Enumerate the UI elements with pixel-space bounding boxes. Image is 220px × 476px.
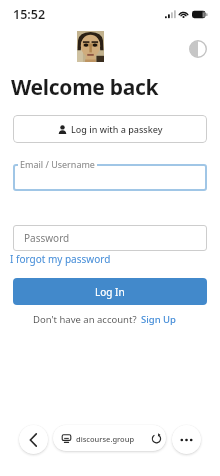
- button[interactable]: [172, 425, 201, 454]
- staticText: Log In: [95, 285, 125, 299]
- staticText: Welcome back: [11, 73, 159, 102]
- staticText: Don't have an account?: [33, 313, 137, 326]
- button[interactable]: Sign Up: [141, 313, 177, 326]
- staticText: Password: [24, 231, 70, 245]
- button[interactable]: discourse.group: [53, 425, 166, 451]
- staticText: Email / Username: [20, 158, 95, 170]
- staticText: I forgot my password: [10, 252, 111, 266]
- button[interactable]: I forgot my password: [10, 252, 111, 266]
- button[interactable]: Log in with a passkey: [13, 115, 207, 143]
- button[interactable]: Log In: [13, 278, 207, 305]
- staticText: Sign Up: [141, 313, 177, 326]
- button[interactable]: Password: [13, 225, 207, 251]
- staticText: 15:52: [13, 6, 46, 23]
- staticText: Log in with a passkey: [71, 123, 163, 135]
- button[interactable]: [13, 164, 207, 191]
- staticText: discourse.group: [76, 434, 135, 444]
- button[interactable]: [19, 425, 48, 454]
